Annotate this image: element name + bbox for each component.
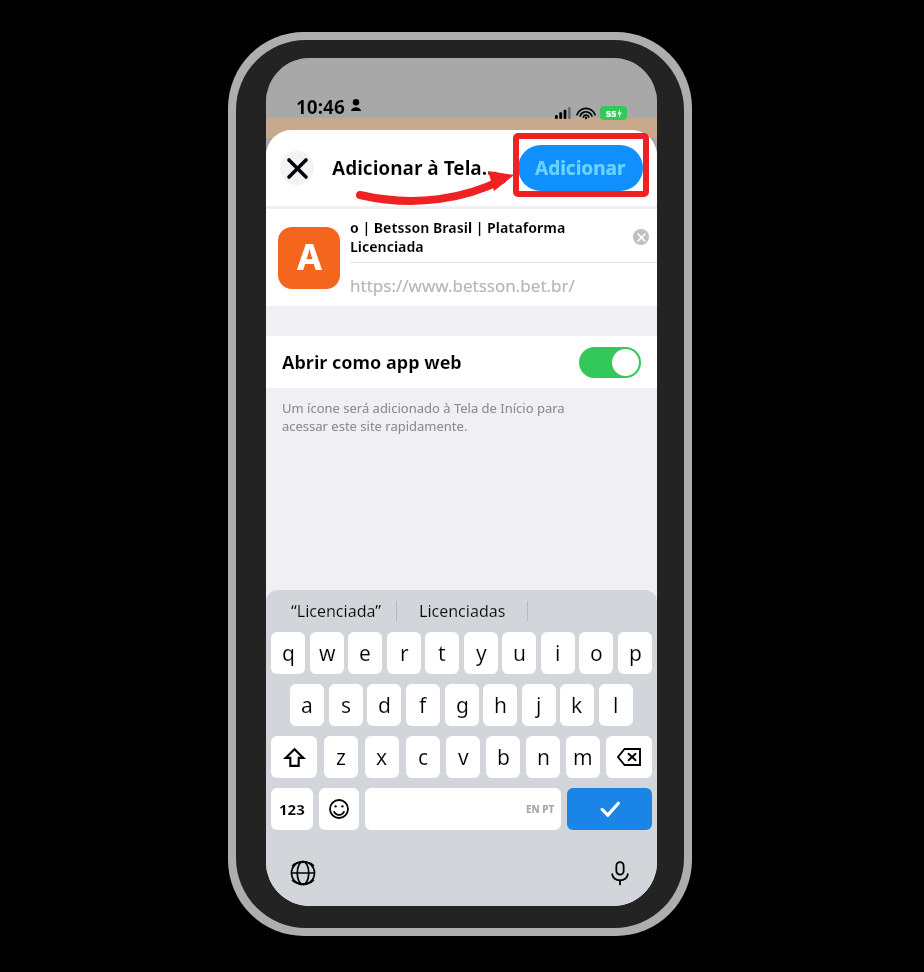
staticText: m: [573, 743, 593, 772]
staticText: h: [494, 691, 507, 720]
staticText: f: [419, 691, 427, 720]
button[interactable]: Fechar: [280, 151, 314, 185]
staticText: b: [497, 743, 510, 772]
button[interactable]: q: [271, 632, 305, 674]
staticText: s: [341, 691, 352, 720]
staticText: x: [376, 743, 388, 772]
staticText: Um ícone será adicionado à Tela de Iníci…: [282, 399, 565, 435]
button[interactable]: b: [486, 736, 520, 778]
button[interactable]: j: [522, 684, 556, 726]
staticText: EN PT: [526, 802, 555, 816]
button[interactable]: Licenciadas: [397, 600, 527, 622]
staticText: l: [613, 691, 619, 720]
button[interactable]: i: [541, 632, 575, 674]
button[interactable]: Adicionar: [518, 145, 643, 191]
staticText: d: [378, 691, 391, 720]
button[interactable]: Shift: [271, 736, 317, 778]
staticText: v: [458, 743, 469, 772]
button[interactable]: h: [483, 684, 517, 726]
button[interactable]: v: [446, 736, 480, 778]
staticText: q: [282, 639, 295, 668]
staticText: r: [400, 639, 409, 668]
button[interactable]: w: [310, 632, 344, 674]
button[interactable]: r: [387, 632, 421, 674]
staticText: Abrir como app web: [282, 350, 462, 375]
button[interactable]: 123: [271, 788, 313, 830]
staticText: 10:46: [296, 94, 345, 120]
button[interactable]: “Licenciada”: [276, 600, 396, 622]
button[interactable]: u: [502, 632, 536, 674]
button[interactable]: l: [599, 684, 633, 726]
staticText: Adicionar: [535, 155, 626, 181]
staticText: o | Betsson Brasil | Plataforma Licencia…: [350, 218, 633, 256]
button[interactable]: z: [324, 736, 358, 778]
staticText: u: [513, 639, 526, 668]
staticText: j: [536, 691, 542, 720]
staticText: Adicionar à Tela...: [332, 155, 498, 181]
button[interactable]: y: [464, 632, 498, 674]
button[interactable]: Ditado: [607, 860, 633, 886]
button[interactable]: g: [445, 684, 479, 726]
button[interactable]: m: [566, 736, 600, 778]
button[interactable]: s: [329, 684, 363, 726]
button[interactable]: Limpar: [633, 229, 649, 245]
button[interactable]: n: [526, 736, 560, 778]
staticText: g: [456, 691, 469, 720]
staticText: A: [297, 232, 322, 281]
staticText: Licenciadas: [419, 600, 506, 622]
staticText: i: [555, 639, 561, 668]
staticText: c: [418, 743, 429, 772]
button[interactable]: Confirmar: [567, 788, 652, 830]
staticText: y: [476, 639, 487, 668]
button[interactable]: c: [406, 736, 440, 778]
staticText: “Licenciada”: [291, 600, 382, 622]
staticText: 123: [279, 799, 305, 819]
staticText: https://www.betsson.bet.br/: [350, 274, 575, 297]
button[interactable]: t: [425, 632, 459, 674]
staticText: k: [571, 691, 583, 720]
button[interactable]: Emoji: [319, 788, 359, 830]
button[interactable]: Backspace: [606, 736, 652, 778]
button[interactable]: e: [348, 632, 382, 674]
staticText: 55: [606, 107, 617, 119]
button[interactable]: o: [579, 632, 613, 674]
staticText: z: [336, 743, 346, 772]
staticText: a: [301, 691, 313, 720]
staticText: p: [629, 639, 642, 668]
button[interactable]: EN PT: [365, 788, 561, 830]
staticText: t: [438, 639, 446, 668]
button[interactable]: x: [365, 736, 399, 778]
button[interactable]: Abrir como app web: [579, 347, 641, 378]
staticText: e: [359, 639, 371, 668]
staticText: o: [590, 639, 603, 668]
button[interactable]: f: [406, 684, 440, 726]
button[interactable]: k: [560, 684, 594, 726]
button[interactable]: p: [618, 632, 652, 674]
button[interactable]: Idioma: [290, 860, 316, 886]
staticText: w: [319, 639, 336, 668]
button[interactable]: d: [367, 684, 401, 726]
staticText: n: [537, 743, 550, 772]
button[interactable]: a: [290, 684, 324, 726]
